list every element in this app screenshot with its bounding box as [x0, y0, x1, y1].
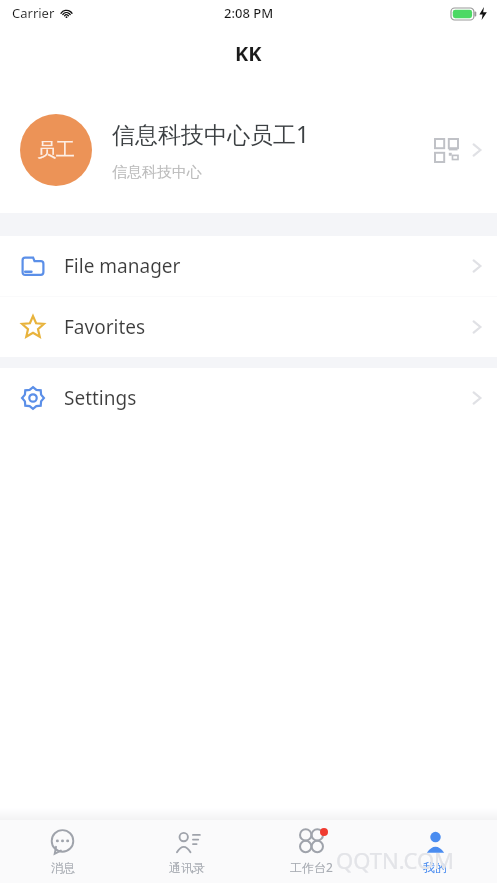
staticText: File manager — [64, 253, 471, 279]
staticText: 信息科技中心 — [112, 163, 202, 182]
staticText: QQTN.COM — [336, 845, 455, 875]
staticText: 我的 — [423, 860, 447, 875]
staticText: 通讯录 — [169, 860, 205, 875]
staticText: Settings — [64, 385, 471, 411]
button[interactable]: QR code — [429, 133, 463, 167]
button[interactable]: File manager — [0, 236, 497, 296]
staticText: Carrier — [12, 4, 55, 22]
staticText: 消息 — [51, 860, 75, 875]
button[interactable]: 通讯录 — [125, 820, 249, 883]
staticText: 员工 — [37, 138, 75, 162]
staticText: 信息科技中心员工1 — [112, 118, 310, 149]
button[interactable]: 工作台2 — [249, 820, 373, 883]
staticText: KK — [235, 40, 262, 67]
button[interactable]: 我的 — [373, 820, 497, 883]
button[interactable]: 消息 — [0, 820, 125, 883]
staticText: Favorites — [64, 314, 471, 340]
button[interactable]: 员工 — [0, 86, 497, 213]
button[interactable]: Settings — [0, 368, 497, 428]
staticText: 工作台2 — [290, 859, 333, 875]
button[interactable]: Favorites — [0, 297, 497, 357]
staticText: 2:08 PM — [224, 4, 274, 22]
